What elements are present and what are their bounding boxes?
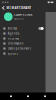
- staticText: account: [14, 17, 24, 20]
- button[interactable]: Información: [0, 41, 45, 46]
- staticText: Información: [8, 42, 24, 45]
- button[interactable]: Back: [5, 92, 16, 100]
- button[interactable]: Back: [1, 5, 5, 10]
- button[interactable]: Reservas: [0, 36, 45, 41]
- button[interactable]: Recents: [39, 92, 50, 100]
- button[interactable]: Ajustes: [0, 51, 45, 56]
- staticText: MI MARTIGNANT: [7, 6, 32, 10]
- button[interactable]: Alertas: [0, 26, 45, 31]
- button[interactable]: Datos personales: [0, 46, 45, 51]
- button[interactable]: Agenda: [0, 31, 45, 36]
- staticText: Alertas: [8, 27, 17, 30]
- staticText: Agenda: [8, 32, 19, 35]
- staticText: Datos personales: [8, 47, 31, 50]
- staticText: Reservas: [8, 37, 19, 40]
- button[interactable]: Home: [22, 92, 33, 100]
- staticText: CLIENTE CODE: [14, 13, 32, 16]
- staticText: Ajustes: [8, 52, 18, 55]
